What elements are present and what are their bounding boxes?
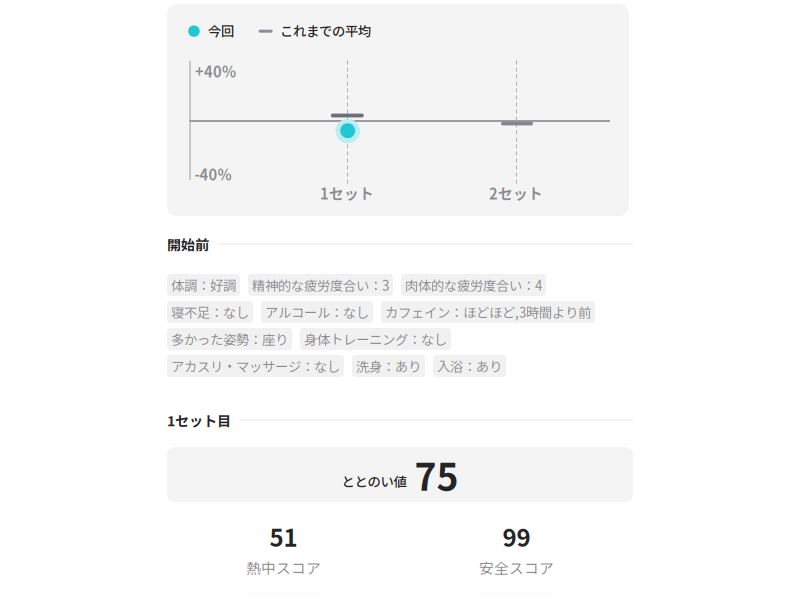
staticText: 1セット目 (167, 410, 231, 430)
button[interactable]: 多かった姿勢：座り (167, 328, 292, 350)
button[interactable]: 寝不足：なし (167, 301, 253, 323)
button[interactable]: カフェイン：ほどほど,3時間より前 (381, 301, 595, 323)
staticText: 身体トレーニング：なし (304, 329, 447, 349)
staticText: 1セット (320, 182, 374, 204)
staticText: 肉体的な疲労度合い：4 (405, 275, 542, 295)
staticText: ととのい値 (341, 471, 406, 490)
staticText: 体調：好調 (171, 275, 236, 295)
button[interactable]: 入浴：あり (433, 355, 506, 377)
staticText: -40% (194, 163, 231, 185)
staticText: 多かった姿勢：座り (171, 329, 288, 349)
staticText: 熱中スコア (246, 557, 321, 578)
staticText: 寝不足：なし (171, 302, 249, 322)
staticText: 精神的な疲労度合い：3 (252, 275, 389, 295)
button[interactable]: 肉体的な疲労度合い：4 (401, 274, 546, 296)
staticText: 洗身：あり (356, 356, 421, 376)
button[interactable]: 精神的な疲労度合い：3 (248, 274, 393, 296)
staticText: アカスリ・マッサージ：なし (171, 356, 340, 376)
staticText: アルコール：なし (265, 302, 369, 322)
staticText: 開始前 (167, 234, 209, 254)
staticText: 51 (269, 519, 297, 554)
button[interactable]: 洗身：あり (352, 355, 425, 377)
button[interactable]: 体調：好調 (167, 274, 240, 296)
staticText: +40% (195, 60, 236, 82)
staticText: カフェイン：ほどほど,3時間より前 (385, 302, 591, 322)
staticText: 入浴：あり (437, 356, 502, 376)
button[interactable]: アルコール：なし (261, 301, 373, 323)
staticText: 2セット (489, 182, 543, 204)
button[interactable]: 身体トレーニング：なし (300, 328, 451, 350)
staticText: 今回 (208, 21, 234, 40)
staticText: これまでの平均 (280, 21, 371, 40)
staticText: 75 (414, 447, 458, 502)
staticText: 安全スコア (479, 557, 554, 578)
staticText: 99 (502, 519, 530, 554)
button[interactable]: アカスリ・マッサージ：なし (167, 355, 344, 377)
